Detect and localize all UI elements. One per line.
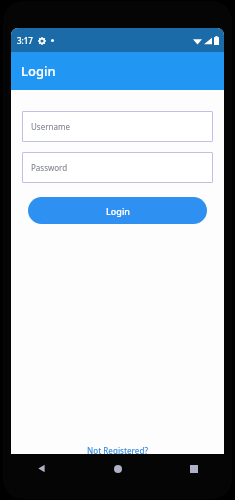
staticText: 3:17	[17, 35, 33, 46]
button[interactable]: Password	[22, 152, 213, 183]
button[interactable]: Back	[3, 454, 80, 483]
staticText: Login	[106, 205, 130, 217]
staticText: Not Registered?	[87, 445, 148, 456]
button[interactable]: Recent apps	[156, 454, 232, 483]
button[interactable]: Login	[28, 197, 207, 224]
staticText: Login	[21, 62, 56, 80]
button[interactable]: Username	[22, 111, 213, 142]
button[interactable]: Not Registered?	[11, 440, 224, 461]
button[interactable]: Home	[80, 454, 156, 483]
staticText: Username	[31, 121, 70, 132]
staticText: Password	[31, 162, 68, 173]
